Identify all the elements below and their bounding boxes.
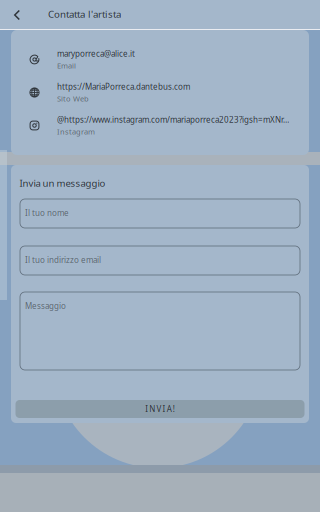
button[interactable]: Back (3, 0, 31, 30)
staticText: https://MariaPorreca.dantebus.com (57, 81, 190, 92)
staticText: maryporreca@alice.it (57, 48, 135, 59)
staticText: Messaggio (25, 300, 66, 311)
staticText: Email (57, 61, 76, 71)
staticText: Invia un messaggio (19, 176, 105, 190)
staticText: @https://www.instagram.com/mariaporreca2… (57, 114, 289, 125)
button[interactable]: maryporreca@alice.it (11, 43, 309, 76)
staticText: Il tuo indirizzo email (25, 254, 101, 265)
staticText: Contatta l'artista (48, 7, 121, 21)
button[interactable]: @https://www.instagram.com/mariaporreca2… (11, 109, 309, 142)
button[interactable]: INVIA! (15, 400, 304, 418)
staticText: Sito Web (57, 94, 89, 104)
staticText: INVIA! (145, 404, 175, 414)
button[interactable]: https://MariaPorreca.dantebus.com (11, 76, 309, 109)
staticText: Il tuo nome (25, 207, 69, 218)
staticText: Instagram (57, 127, 95, 137)
